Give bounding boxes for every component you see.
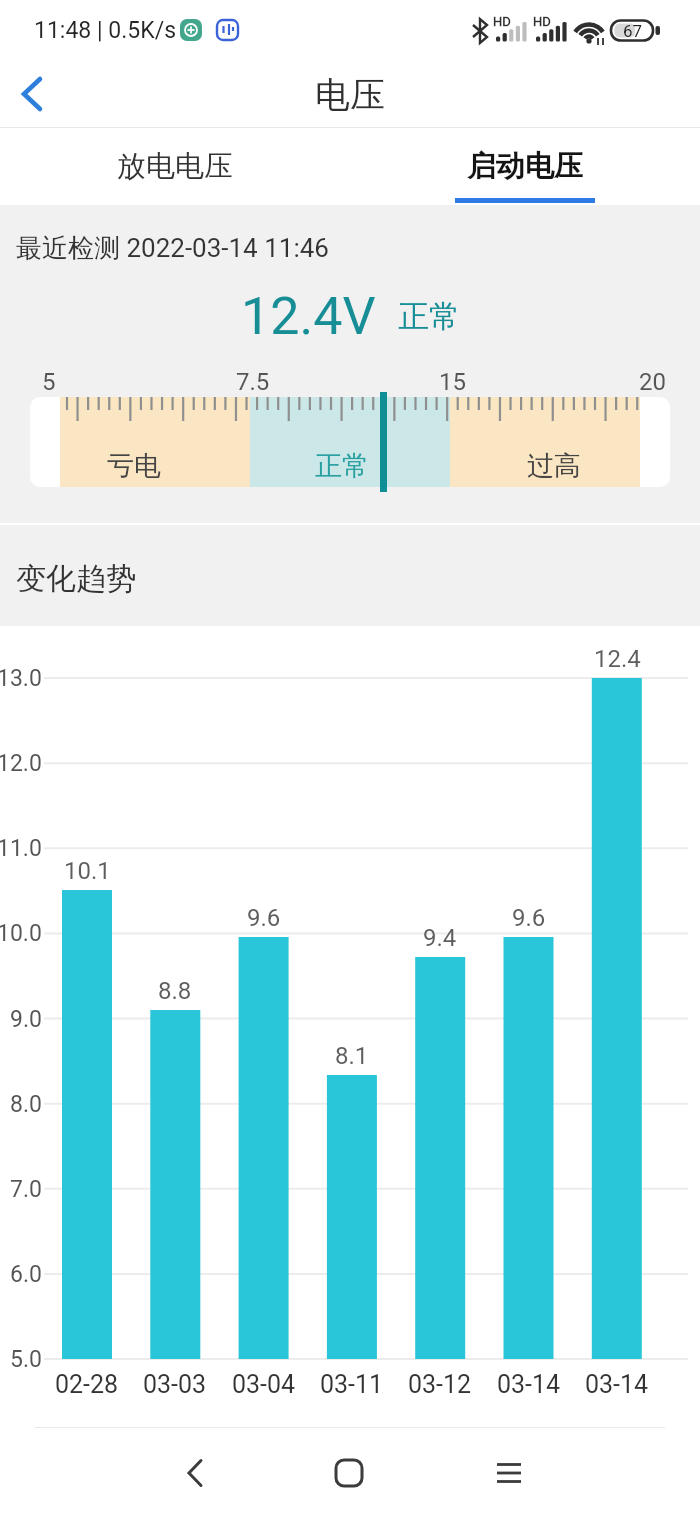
staticText: 03-04 (232, 1370, 296, 1399)
staticText: 9.6 (247, 904, 281, 932)
button[interactable] (294, 1440, 404, 1506)
staticText: 7.5 (236, 368, 270, 396)
staticText: 最近检测 2022-03-14 11:46 (16, 232, 329, 265)
staticText: 8.8 (158, 977, 192, 1005)
staticText: 11.0 (0, 835, 42, 862)
staticText: 03-03 (143, 1370, 207, 1399)
staticText: 7.0 (10, 1176, 42, 1203)
staticText: 15 (439, 368, 466, 396)
staticText: HD (533, 14, 551, 29)
button[interactable] (454, 1440, 564, 1506)
staticText: 放电电压 (117, 148, 233, 185)
staticText: 6.0 (10, 1261, 42, 1288)
button[interactable] (140, 1440, 250, 1506)
staticText: 正常 (315, 449, 369, 483)
staticText: 9.6 (512, 904, 546, 932)
staticText: 启动电压 (467, 148, 583, 185)
staticText: 亏电 (107, 449, 161, 483)
staticText: 正常 (398, 297, 460, 336)
staticText: 03-14 (585, 1370, 649, 1399)
staticText: 8.1 (335, 1042, 369, 1070)
staticText: 12.4 (594, 645, 641, 673)
staticText: 5 (42, 368, 56, 396)
button[interactable]: 启动电压 (350, 129, 700, 203)
button[interactable]: 放电电压 (0, 129, 350, 203)
staticText: 电压 (315, 73, 385, 117)
staticText: 67 (623, 21, 643, 41)
staticText: 03-14 (497, 1370, 561, 1399)
staticText: 变化趋势 (16, 560, 136, 598)
staticText: 9.4 (423, 924, 457, 952)
staticText: HD (493, 14, 511, 29)
staticText: 10.1 (64, 857, 111, 885)
staticText: 10.0 (0, 920, 42, 947)
button[interactable] (0, 62, 64, 126)
staticText: 03-12 (408, 1370, 472, 1399)
staticText: 过高 (527, 449, 581, 483)
staticText: 02-28 (55, 1370, 119, 1399)
staticText: 8.0 (10, 1091, 42, 1118)
staticText: 9.0 (10, 1006, 42, 1033)
staticText: 13.0 (0, 665, 42, 692)
staticText: 20 (639, 368, 666, 396)
staticText: 11:48 | 0.5K/s (34, 17, 177, 44)
staticText: 03-11 (320, 1370, 384, 1399)
staticText: 12.4V (241, 286, 376, 347)
staticText: 5.0 (10, 1346, 42, 1373)
staticText: 12.0 (0, 750, 42, 777)
